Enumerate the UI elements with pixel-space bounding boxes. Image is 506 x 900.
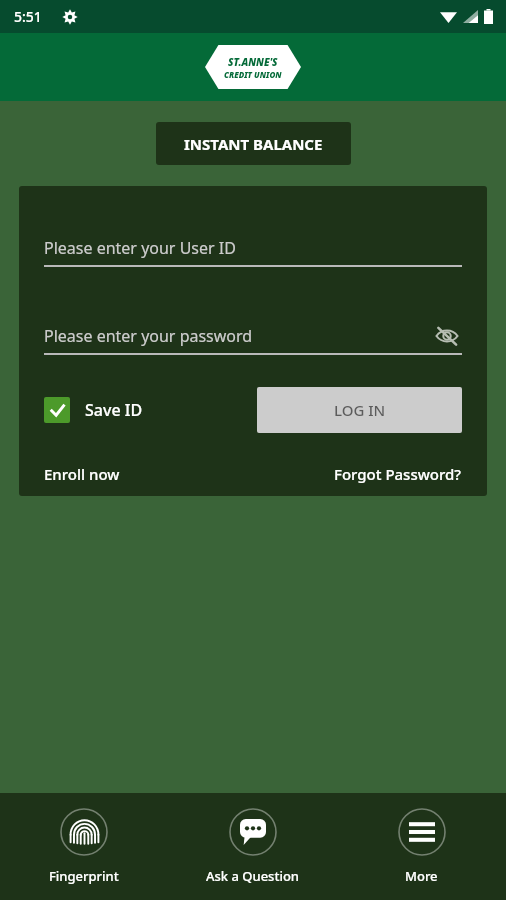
staticText: Save ID [85, 399, 143, 421]
button[interactable]: Enroll now [44, 460, 120, 488]
staticText: Fingerprint [49, 867, 119, 885]
staticText: Enroll now [44, 464, 120, 484]
button[interactable]: Fingerprint [0, 793, 168, 900]
button[interactable]: Ask a Question [168, 793, 337, 900]
button[interactable]: Show password [432, 321, 462, 351]
staticText: More [405, 867, 438, 885]
staticText: ST.ANNE'S [228, 55, 278, 69]
button[interactable]: Forgot Password? [334, 460, 462, 488]
button[interactable]: More [337, 793, 506, 900]
staticText: INSTANT BALANCE [184, 134, 323, 154]
button[interactable]: Please enter your password [44, 325, 253, 347]
button[interactable]: LOG IN [257, 387, 462, 433]
button[interactable]: Please enter your User ID [44, 231, 462, 265]
staticText: Ask a Question [206, 867, 300, 885]
button[interactable]: INSTANT BALANCE [156, 122, 351, 165]
staticText: LOG IN [334, 400, 386, 420]
staticText: Forgot Password? [334, 464, 462, 484]
staticText: 5:51 [14, 7, 42, 26]
button[interactable]: Save ID [44, 397, 143, 423]
staticText: Please enter your User ID [44, 237, 236, 259]
staticText: CREDIT UNION [224, 69, 282, 80]
